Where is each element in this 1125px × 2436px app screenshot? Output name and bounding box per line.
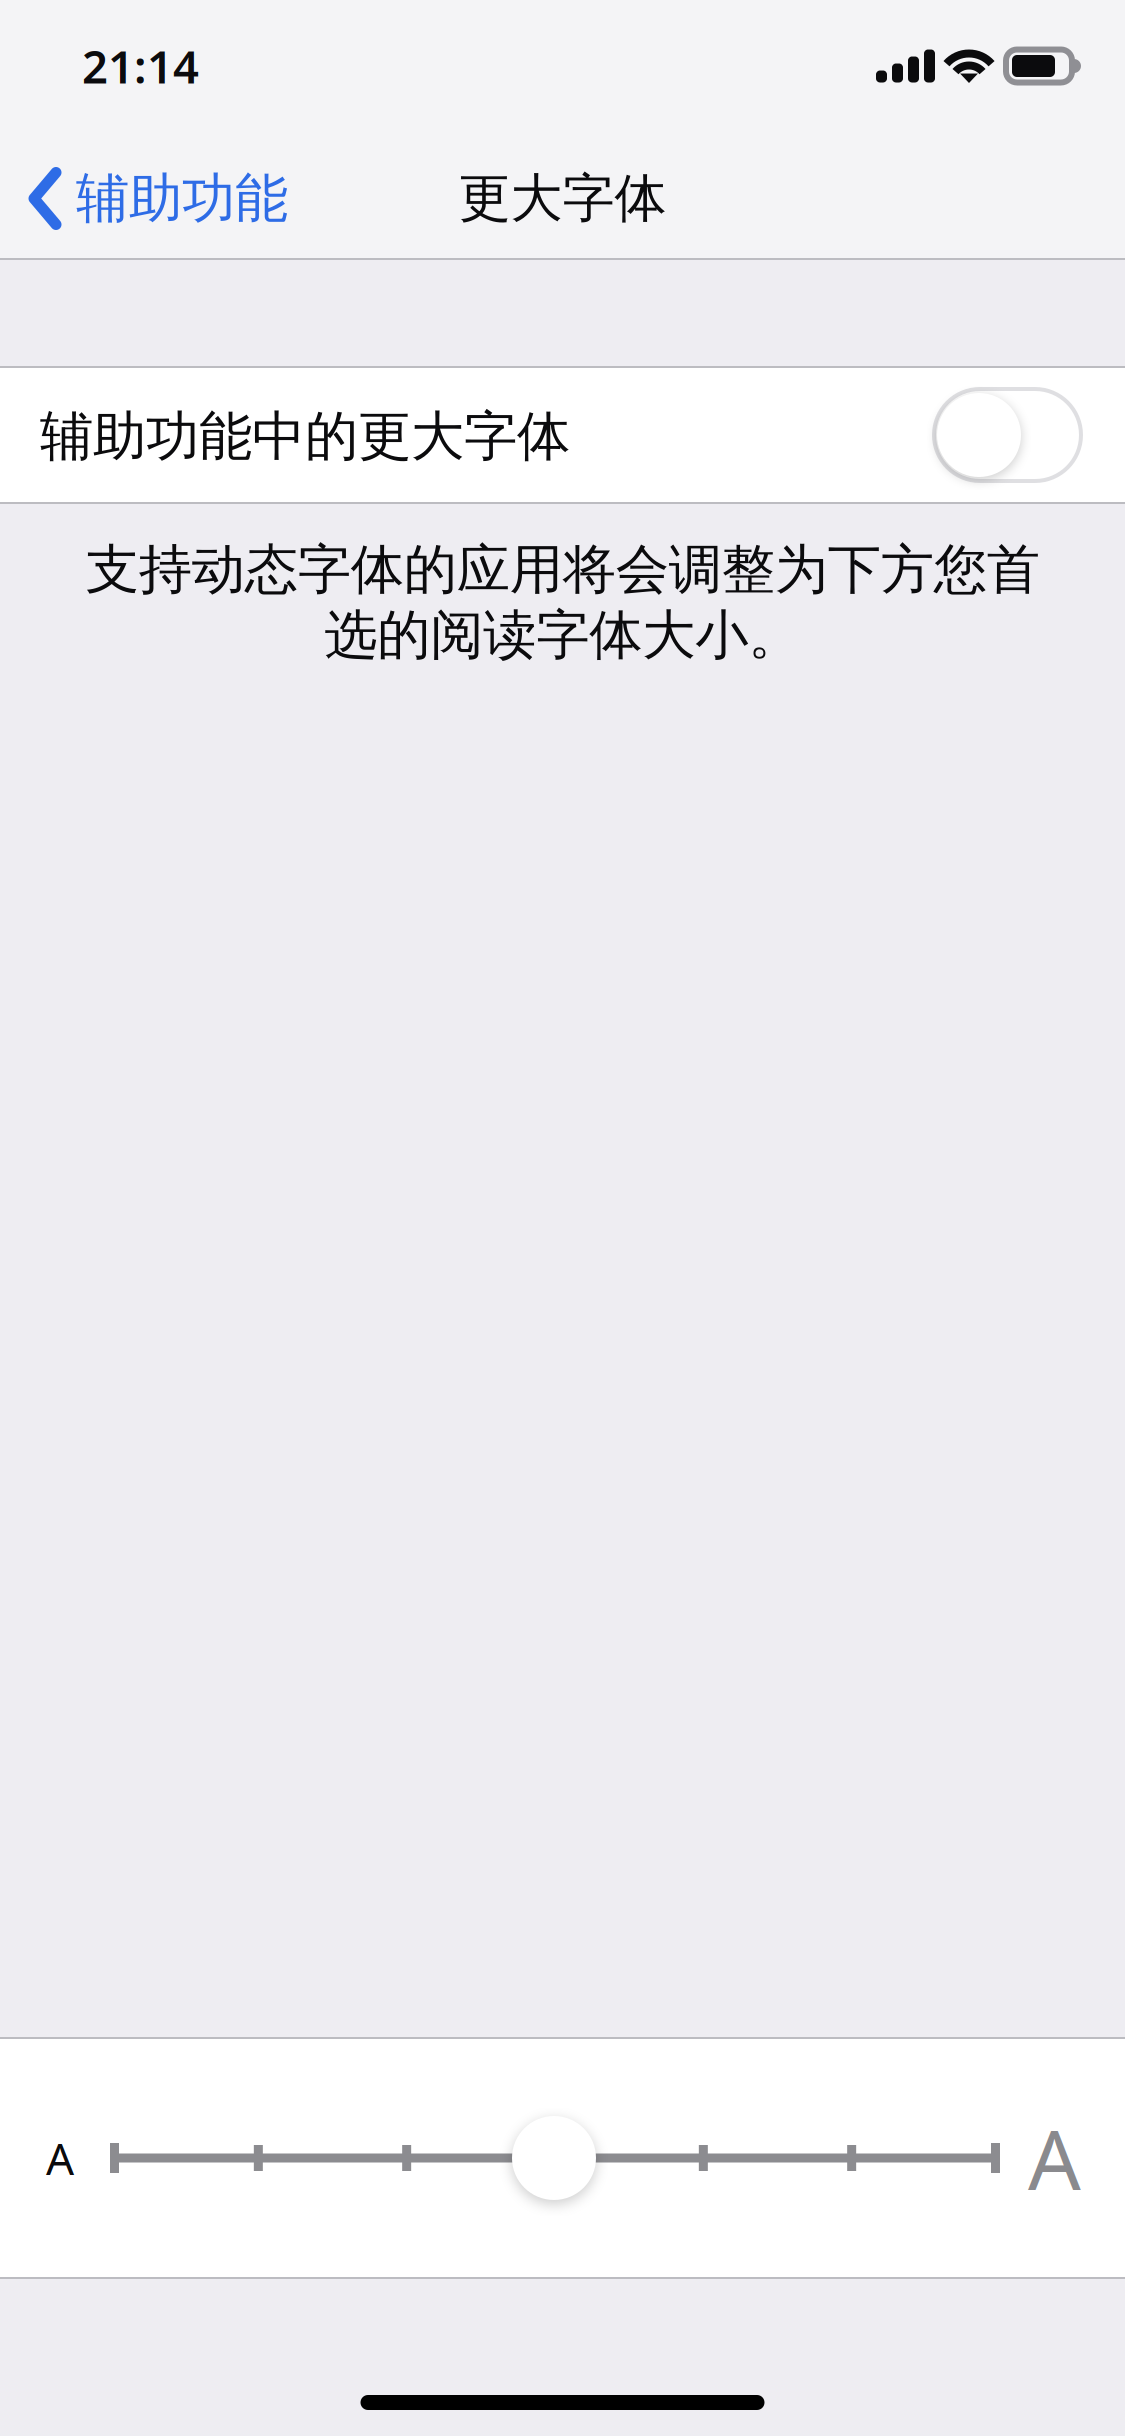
button[interactable]: 字体大小 (0, 2039, 1125, 2277)
staticText: 辅助功能中的更大字体 (40, 404, 570, 469)
staticText: 21:14 (82, 36, 199, 96)
staticText: A (1028, 2103, 1081, 2213)
staticText: A (46, 2129, 74, 2187)
staticText: 支持动态字体的应用将会调整为下方您首选的阅读字体大小。 (85, 537, 1039, 668)
staticText: 辅助功能 (76, 166, 288, 231)
button[interactable]: 返回 辅助功能 (0, 149, 306, 247)
button[interactable]: 辅助功能中的更大字体 (0, 368, 1125, 502)
staticText: 更大字体 (458, 167, 666, 230)
